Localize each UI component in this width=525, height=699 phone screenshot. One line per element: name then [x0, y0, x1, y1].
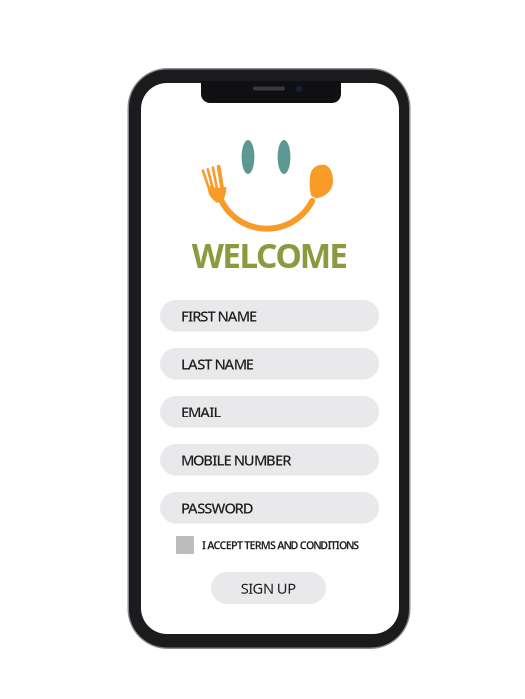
button[interactable]: MOBILE NUMBER [160, 444, 379, 475]
button[interactable]: EMAIL [160, 396, 379, 427]
button[interactable]: PASSWORD [160, 492, 379, 523]
staticText: I ACCEPT TERMS AND CONDITIONS [202, 538, 359, 552]
staticText: FIRST NAME [181, 306, 257, 325]
button[interactable]: SIGN UP [211, 572, 326, 604]
staticText: WELCOME [192, 233, 348, 277]
staticText: LAST NAME [181, 354, 254, 373]
button[interactable]: LAST NAME [160, 348, 379, 379]
button[interactable]: FIRST NAME [160, 300, 379, 331]
staticText: EMAIL [181, 402, 221, 421]
staticText: MOBILE NUMBER [181, 450, 291, 469]
staticText: SIGN UP [241, 578, 296, 598]
staticText: PASSWORD [181, 498, 254, 517]
button[interactable]: I ACCEPT TERMS AND CONDITIONS [176, 536, 359, 554]
